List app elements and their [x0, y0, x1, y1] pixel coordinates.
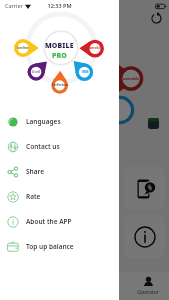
- staticText: About the APP: [26, 217, 72, 226]
- staticText: Operator: [137, 289, 159, 296]
- staticText: Ucell: [27, 70, 45, 74]
- staticText: Rate: [26, 192, 41, 201]
- staticText: 12:33 PM: [0, 2, 119, 9]
- button[interactable]: Payments: [85, 272, 127, 300]
- button[interactable]: Top up balance: [0, 234, 119, 259]
- button[interactable]: Operator: [127, 272, 169, 300]
- staticText: Top up balance: [26, 242, 74, 251]
- staticText: MOBILE: [45, 41, 74, 51]
- staticText: Share: [26, 167, 45, 176]
- button[interactable]: Share: [0, 159, 119, 184]
- button[interactable]: Refresh: [149, 11, 164, 26]
- staticText: UMS: [76, 70, 94, 74]
- staticText: Languages: [26, 117, 61, 126]
- button[interactable]: Wallet: [148, 118, 159, 129]
- staticText: Contact us: [26, 142, 60, 151]
- staticText: Perfectum: [51, 83, 69, 87]
- staticText: uzmobile: [86, 46, 104, 50]
- staticText: PRO: [52, 51, 68, 61]
- staticText: uzmobile: [121, 76, 141, 81]
- staticText: Carrier: [5, 2, 23, 9]
- button[interactable]: About the APP: [0, 209, 119, 234]
- button[interactable]: Rate: [0, 184, 119, 209]
- button[interactable]: Contact us: [0, 134, 119, 159]
- button[interactable]: Service: [124, 167, 165, 210]
- button[interactable]: [0, 0, 169, 300]
- staticText: beeline: [14, 46, 32, 50]
- button[interactable]: Languages: [0, 109, 119, 134]
- button[interactable]: Service: [124, 215, 165, 258]
